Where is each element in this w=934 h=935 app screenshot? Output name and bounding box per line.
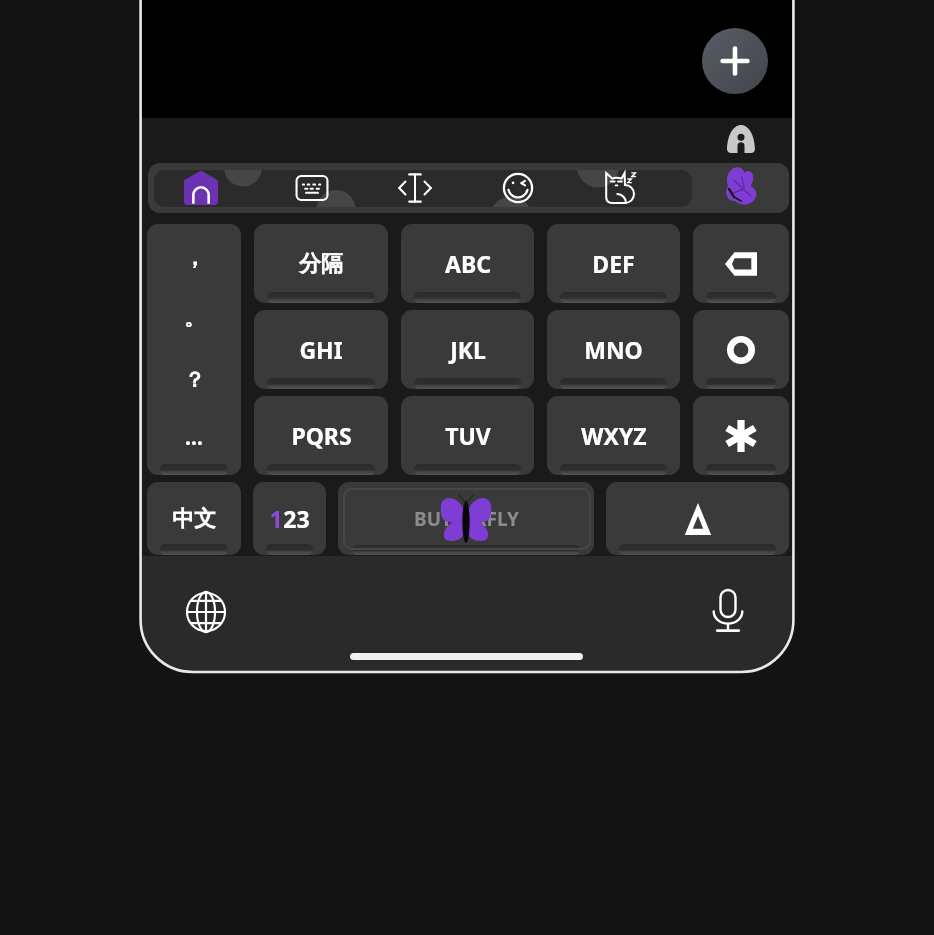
button[interactable]: Enter bbox=[606, 482, 789, 555]
staticText: 。 bbox=[184, 305, 205, 331]
staticText: … bbox=[185, 423, 203, 452]
staticText: BUTTERFLY bbox=[414, 506, 519, 532]
button[interactable]: Move cursor bbox=[397, 170, 433, 206]
button[interactable]: Space bbox=[338, 482, 594, 555]
button[interactable]: TUV bbox=[401, 396, 534, 475]
button[interactable]: Symbols bbox=[693, 396, 789, 475]
staticText: PQRS bbox=[291, 420, 352, 451]
button[interactable]: GHI bbox=[254, 310, 388, 389]
button[interactable]: 中文 bbox=[147, 482, 241, 555]
button[interactable]: Stickers bbox=[602, 170, 638, 206]
button[interactable]: Voice input bbox=[706, 589, 750, 633]
staticText: WXYZ bbox=[581, 420, 647, 451]
button[interactable]: ， bbox=[147, 224, 241, 475]
button[interactable]: MNO bbox=[547, 310, 680, 389]
button[interactable]: 分隔 bbox=[254, 224, 388, 303]
staticText: ？ bbox=[184, 367, 205, 393]
button[interactable]: Backspace bbox=[693, 224, 789, 303]
button[interactable]: Assistant bbox=[183, 170, 219, 206]
staticText: TUV bbox=[445, 420, 491, 451]
button[interactable]: PQRS bbox=[254, 396, 388, 475]
staticText: JKL bbox=[450, 334, 486, 365]
staticText: GHI bbox=[299, 334, 343, 365]
button[interactable]: Keyboard bbox=[294, 170, 330, 206]
button[interactable]: Theme bbox=[722, 169, 758, 205]
staticText: 23 bbox=[283, 503, 310, 534]
staticText: 1 bbox=[269, 503, 283, 534]
button[interactable]: Add bbox=[702, 28, 768, 94]
button[interactable]: WXYZ bbox=[547, 396, 680, 475]
staticText: 分隔 bbox=[299, 250, 343, 278]
staticText: ， bbox=[184, 245, 205, 271]
button[interactable]: ABC bbox=[401, 224, 534, 303]
staticText: DEF bbox=[592, 248, 635, 279]
button[interactable]: JKL bbox=[401, 310, 534, 389]
button[interactable]: Zero bbox=[693, 310, 789, 389]
staticText: 中文 bbox=[172, 505, 216, 533]
button[interactable]: App bbox=[727, 125, 755, 153]
staticText: ABC bbox=[445, 248, 491, 279]
button[interactable]: Emoji bbox=[500, 170, 536, 206]
button[interactable]: Change language bbox=[184, 590, 228, 634]
button[interactable]: 1 bbox=[253, 482, 326, 555]
button[interactable]: DEF bbox=[547, 224, 680, 303]
staticText: MNO bbox=[584, 334, 643, 365]
